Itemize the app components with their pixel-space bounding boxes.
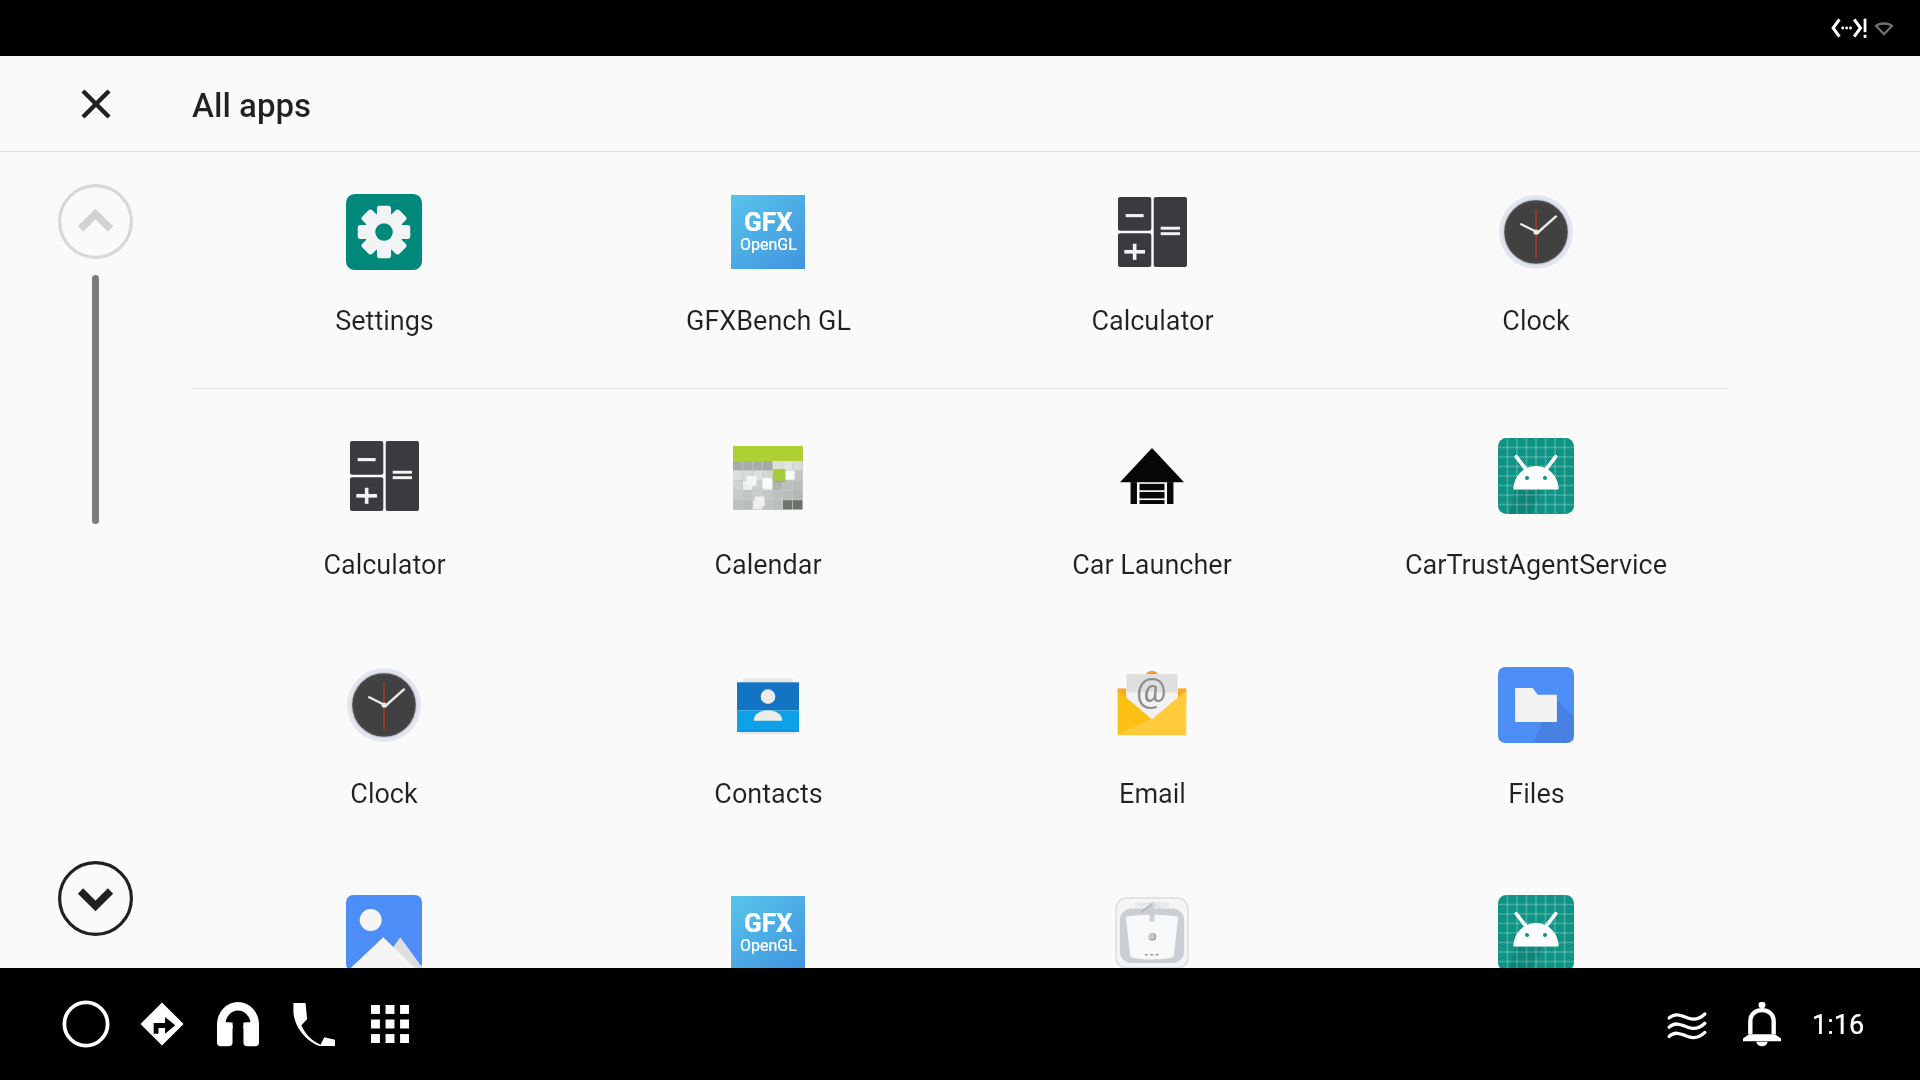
button[interactable]: Home bbox=[48, 986, 124, 1062]
staticText: Calculator bbox=[323, 549, 446, 581]
button[interactable]: Calculator bbox=[982, 172, 1322, 332]
staticText: Calendar bbox=[714, 549, 822, 581]
button[interactable]: Gallery bbox=[214, 873, 554, 1033]
button[interactable]: Calculator bbox=[214, 416, 554, 576]
button[interactable]: Media bbox=[200, 986, 276, 1062]
button[interactable]: Host Apps bbox=[982, 873, 1322, 1033]
staticText: Car Launcher bbox=[1072, 549, 1232, 581]
button[interactable]: CarTrustAgentService bbox=[1366, 416, 1706, 576]
staticText: CarTrustAgentService bbox=[1405, 549, 1667, 581]
staticText: Clock bbox=[350, 778, 418, 810]
staticText: Email bbox=[1119, 778, 1186, 810]
staticText: Settings bbox=[335, 305, 434, 337]
button[interactable]: All apps bbox=[352, 986, 428, 1062]
staticText: All apps bbox=[192, 86, 312, 125]
button[interactable]: Files bbox=[1366, 645, 1706, 805]
staticText: GFX bbox=[744, 207, 793, 237]
button[interactable]: Climate bbox=[1649, 986, 1725, 1062]
staticText: GFXBench GL bbox=[686, 305, 851, 337]
button[interactable]: Scroll down bbox=[58, 861, 133, 936]
button[interactable]: Phone bbox=[276, 986, 352, 1062]
button[interactable]: Scroll up bbox=[58, 184, 133, 259]
staticText: OpenGL bbox=[740, 235, 797, 254]
button[interactable]: GFX bbox=[598, 172, 938, 332]
button[interactable]: Android app bbox=[1366, 873, 1706, 1033]
staticText: Contacts bbox=[714, 778, 823, 810]
staticText: @ bbox=[1136, 670, 1167, 710]
staticText: Clock bbox=[1502, 305, 1570, 337]
button[interactable]: Close bbox=[66, 74, 126, 134]
staticText: Files bbox=[1508, 778, 1565, 810]
button[interactable]: @ bbox=[982, 645, 1322, 805]
button[interactable]: GFXBench Vulkan bbox=[598, 873, 938, 1033]
staticText: Calculator bbox=[1091, 305, 1214, 337]
button[interactable]: Settings bbox=[214, 172, 554, 332]
button[interactable]: Calendar bbox=[598, 416, 938, 576]
staticText: GFX bbox=[744, 908, 793, 938]
staticText: 1:16 bbox=[1812, 1009, 1865, 1041]
button[interactable]: Car Launcher bbox=[982, 416, 1322, 576]
staticText: OpenGL bbox=[740, 936, 797, 955]
button[interactable]: Clock bbox=[1366, 172, 1706, 332]
button[interactable]: Notifications bbox=[1724, 986, 1800, 1062]
button[interactable]: Clock bbox=[214, 645, 554, 805]
button[interactable]: Navigation bbox=[124, 986, 200, 1062]
button[interactable]: Contacts bbox=[598, 645, 938, 805]
